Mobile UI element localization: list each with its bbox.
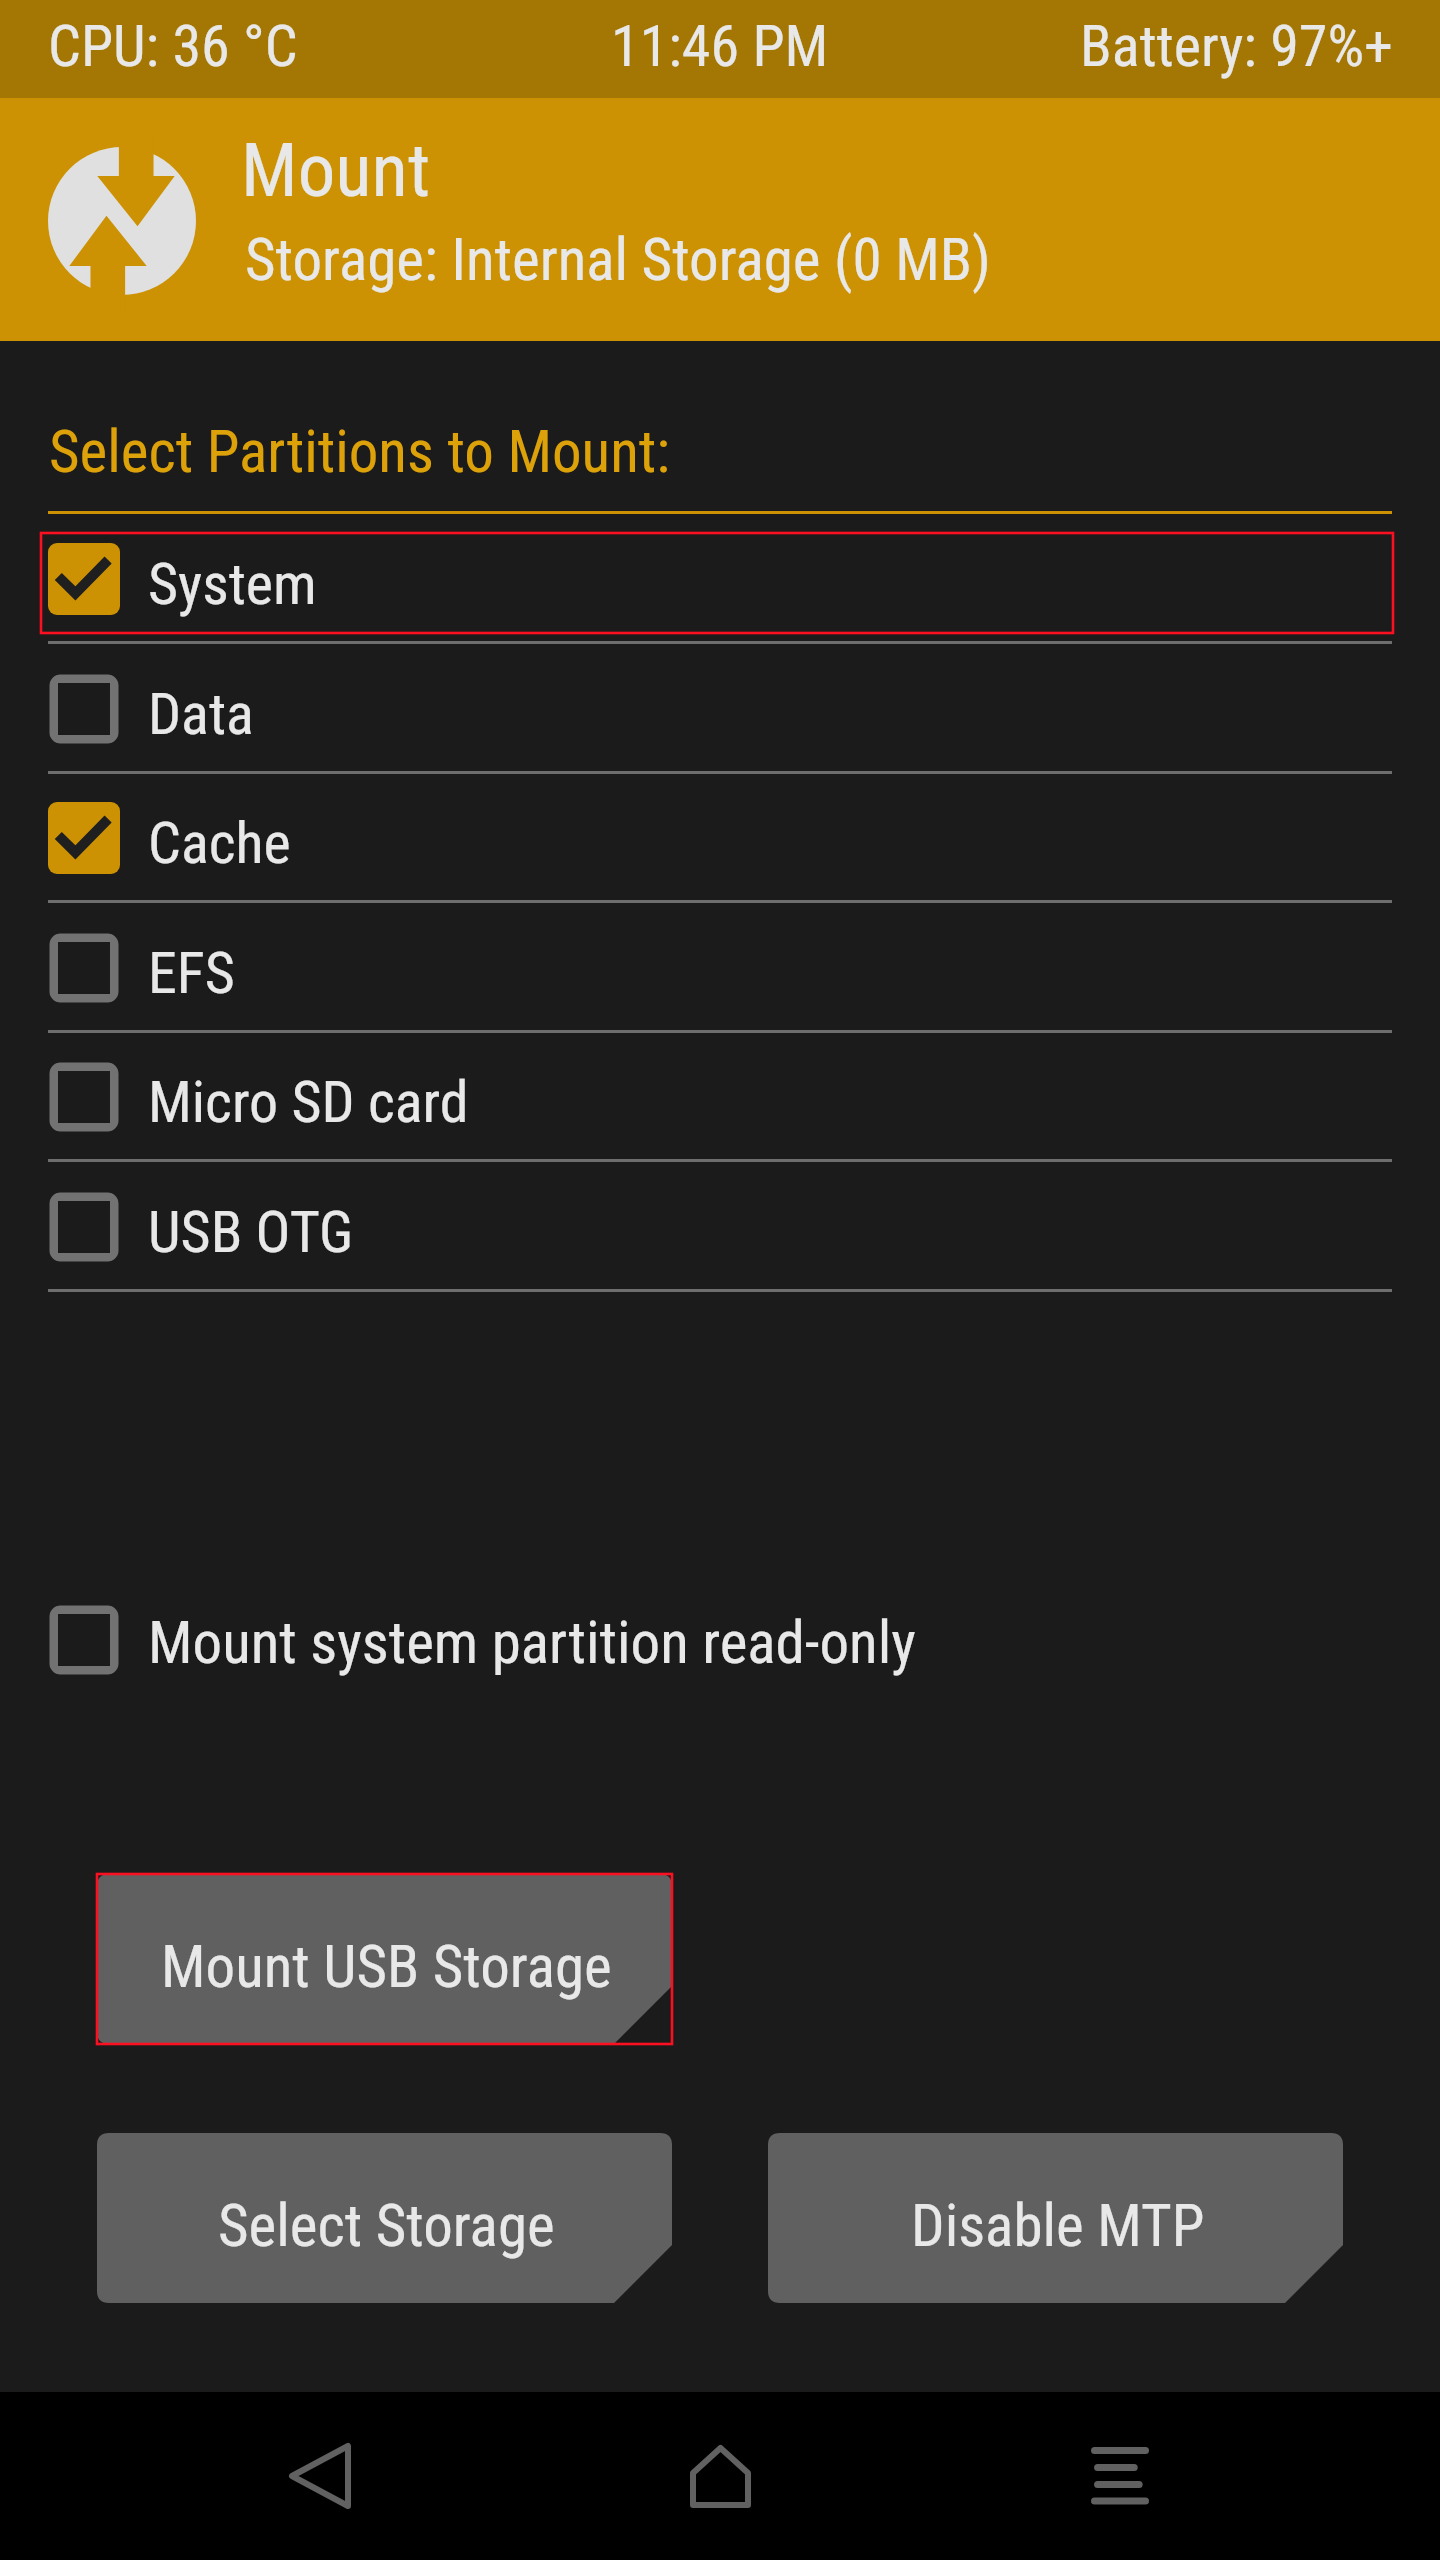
staticText: Cache bbox=[148, 809, 291, 877]
button[interactable]: Menu bbox=[1050, 2413, 1190, 2539]
staticText: USB OTG bbox=[148, 1198, 354, 1266]
staticText: Mount USB Storage bbox=[161, 1932, 612, 2001]
button[interactable]: Cache bbox=[41, 773, 1393, 903]
staticText: Select Partitions to Mount: bbox=[49, 417, 670, 486]
button[interactable]: USB OTG bbox=[41, 1162, 1393, 1292]
staticText: EFS bbox=[148, 939, 235, 1007]
button[interactable]: Disable MTP bbox=[768, 2133, 1343, 2303]
staticText: Micro SD card bbox=[148, 1068, 469, 1136]
button[interactable]: Data bbox=[41, 644, 1393, 774]
button[interactable]: EFS bbox=[41, 903, 1393, 1033]
staticText: Data bbox=[148, 680, 254, 748]
button[interactable]: Mount system partition read-only bbox=[48, 1594, 948, 1686]
button[interactable]: Select Storage bbox=[97, 2133, 672, 2303]
staticText: Battery: 97%+ bbox=[1080, 12, 1393, 80]
staticText: Mount system partition read-only bbox=[148, 1608, 916, 1677]
button[interactable]: Mount USB Storage bbox=[97, 1874, 672, 2044]
staticText: Disable MTP bbox=[911, 2191, 1205, 2260]
staticText: CPU: 36 °C bbox=[48, 12, 298, 80]
button[interactable]: Back bbox=[250, 2413, 390, 2539]
button[interactable]: Micro SD card bbox=[41, 1032, 1393, 1162]
staticText: Storage: Internal Storage (0 MB) bbox=[245, 225, 991, 294]
button[interactable]: Home bbox=[650, 2413, 790, 2539]
staticText: 11:46 PM bbox=[611, 12, 829, 80]
staticText: System bbox=[148, 550, 317, 618]
staticText: Mount bbox=[241, 126, 431, 214]
staticText: Select Storage bbox=[218, 2191, 555, 2260]
button[interactable]: System bbox=[41, 514, 1393, 644]
